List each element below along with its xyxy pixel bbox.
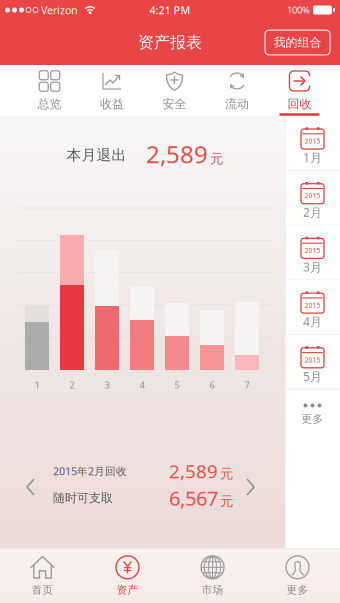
staticText: 收益 bbox=[100, 97, 124, 111]
button[interactable]: 2015 bbox=[285, 171, 340, 225]
button[interactable]: 安全 bbox=[151, 65, 197, 116]
button[interactable]: 更多 bbox=[255, 549, 340, 603]
staticText: 3月 bbox=[303, 259, 322, 275]
staticText: 100% bbox=[287, 4, 310, 16]
staticText: 资产 bbox=[116, 583, 138, 596]
staticText: 2,589 bbox=[146, 138, 208, 170]
staticText: 2015 bbox=[304, 137, 320, 145]
staticText: 安全 bbox=[162, 97, 186, 111]
staticText: 资产报表 bbox=[138, 33, 202, 52]
button[interactable]: 2015 bbox=[285, 280, 340, 334]
staticText: 1月 bbox=[303, 149, 322, 165]
button[interactable]: 上一月 bbox=[18, 471, 44, 505]
staticText: 2015 bbox=[304, 355, 320, 364]
staticText: 2015 bbox=[304, 301, 320, 310]
button[interactable]: 流动 bbox=[214, 65, 260, 116]
staticText: 元 bbox=[220, 466, 233, 482]
staticText: 4月 bbox=[303, 314, 322, 329]
staticText: 6 bbox=[209, 379, 214, 391]
staticText: 我的组合 bbox=[273, 35, 321, 50]
button[interactable]: 资产 bbox=[85, 549, 170, 603]
staticText: 5月 bbox=[303, 368, 322, 384]
button[interactable]: 总览 bbox=[26, 65, 72, 116]
button[interactable]: 首页 bbox=[0, 549, 85, 603]
button[interactable]: 回收 bbox=[276, 65, 322, 116]
staticText: 总览 bbox=[37, 97, 61, 111]
staticText: Verizon bbox=[41, 3, 78, 17]
button[interactable]: 2015 bbox=[285, 225, 340, 279]
staticText: 元 bbox=[220, 493, 233, 509]
staticText: 更多 bbox=[301, 412, 323, 425]
staticText: 首页 bbox=[31, 583, 53, 596]
staticText: 4 bbox=[139, 379, 144, 391]
button[interactable]: 我的组合 bbox=[265, 30, 330, 55]
button[interactable]: 市场 bbox=[170, 549, 255, 603]
staticText: 2015年2月回收 bbox=[53, 464, 127, 478]
staticText: 更多 bbox=[286, 583, 308, 596]
staticText: 3 bbox=[104, 379, 109, 391]
staticText: 6,567 bbox=[169, 485, 218, 511]
staticText: 2,589 bbox=[169, 459, 218, 483]
button[interactable]: 2015 bbox=[285, 116, 340, 170]
staticText: 流动 bbox=[225, 97, 249, 111]
button[interactable]: 收益 bbox=[89, 65, 135, 116]
staticText: 7 bbox=[244, 379, 249, 391]
staticText: 随时可支取 bbox=[53, 491, 113, 505]
button[interactable]: 更多 bbox=[285, 389, 340, 439]
staticText: 2015 bbox=[304, 246, 320, 255]
staticText: 1 bbox=[34, 379, 39, 391]
staticText: 5 bbox=[174, 379, 179, 391]
staticText: 2月 bbox=[303, 204, 322, 220]
staticText: 市场 bbox=[201, 583, 223, 596]
button[interactable]: 2015 bbox=[285, 335, 340, 389]
staticText: 回收 bbox=[287, 97, 311, 111]
staticText: 4:21 PM bbox=[149, 3, 190, 17]
staticText: 元 bbox=[210, 151, 223, 167]
staticText: 2 bbox=[69, 379, 74, 391]
staticText: 2015 bbox=[304, 191, 320, 200]
staticText: 本月退出 bbox=[66, 146, 126, 164]
button[interactable]: 下一月 bbox=[237, 471, 263, 505]
